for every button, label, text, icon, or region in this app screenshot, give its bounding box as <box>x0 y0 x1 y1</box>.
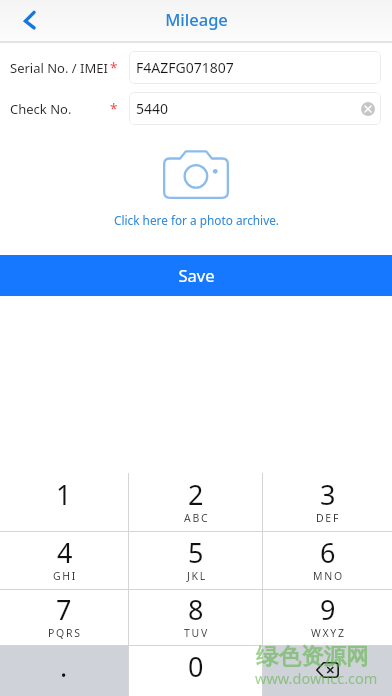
staticText: MNO <box>313 569 344 583</box>
staticText: www.downcc.com <box>255 668 378 688</box>
staticText: Mileage <box>165 8 228 30</box>
staticText: ABC <box>184 511 210 525</box>
staticText: 8 <box>188 591 204 628</box>
staticText: . <box>60 648 68 685</box>
staticText: TUV <box>184 626 209 640</box>
staticText: Click here for a photo archive. <box>114 212 279 228</box>
staticText: 4 <box>57 534 73 571</box>
button[interactable]: 5 <box>129 532 262 589</box>
button[interactable]: . <box>0 646 128 696</box>
button[interactable]: 2 <box>129 473 262 531</box>
button[interactable]: Clear <box>361 102 375 116</box>
staticText: 5 <box>188 534 204 571</box>
staticText: F4AZFG071807 <box>136 58 234 77</box>
staticText: * <box>110 59 118 77</box>
button[interactable]: Delete <box>263 646 392 696</box>
staticText: 6 <box>320 534 336 571</box>
staticText: 2 <box>188 476 204 513</box>
button[interactable]: 1 <box>0 473 128 531</box>
staticText: 绿色资源网 <box>256 642 369 670</box>
staticText: JKL <box>187 569 207 583</box>
staticText: 0 <box>188 648 204 685</box>
button[interactable]: F4AZFG071807 <box>129 51 381 84</box>
button[interactable]: 5440 <box>129 92 381 125</box>
button[interactable]: 0 <box>129 646 262 696</box>
button[interactable]: 6 <box>263 532 392 589</box>
button[interactable]: 3 <box>263 473 392 531</box>
button[interactable]: 7 <box>0 590 128 645</box>
staticText: GHI <box>53 569 78 583</box>
staticText: 1 <box>56 476 72 513</box>
staticText: 9 <box>320 591 336 628</box>
button[interactable]: 4 <box>0 532 128 589</box>
staticText: Save <box>178 264 215 286</box>
button[interactable]: 9 <box>263 590 392 645</box>
staticText: DEF <box>316 511 341 525</box>
staticText: 7 <box>56 591 72 628</box>
staticText: WXYZ <box>311 626 346 640</box>
staticText: * <box>110 100 118 118</box>
staticText: Serial No. / IMEI <box>10 59 108 77</box>
staticText: Check No. <box>10 100 72 118</box>
staticText: 5440 <box>136 99 169 118</box>
button[interactable]: Click here for a photo archive <box>0 140 392 235</box>
staticText: 3 <box>320 476 336 513</box>
staticText: PQRS <box>48 626 82 640</box>
button[interactable]: 8 <box>129 590 262 645</box>
button[interactable]: Back <box>8 0 50 41</box>
button[interactable]: Save <box>0 255 392 296</box>
